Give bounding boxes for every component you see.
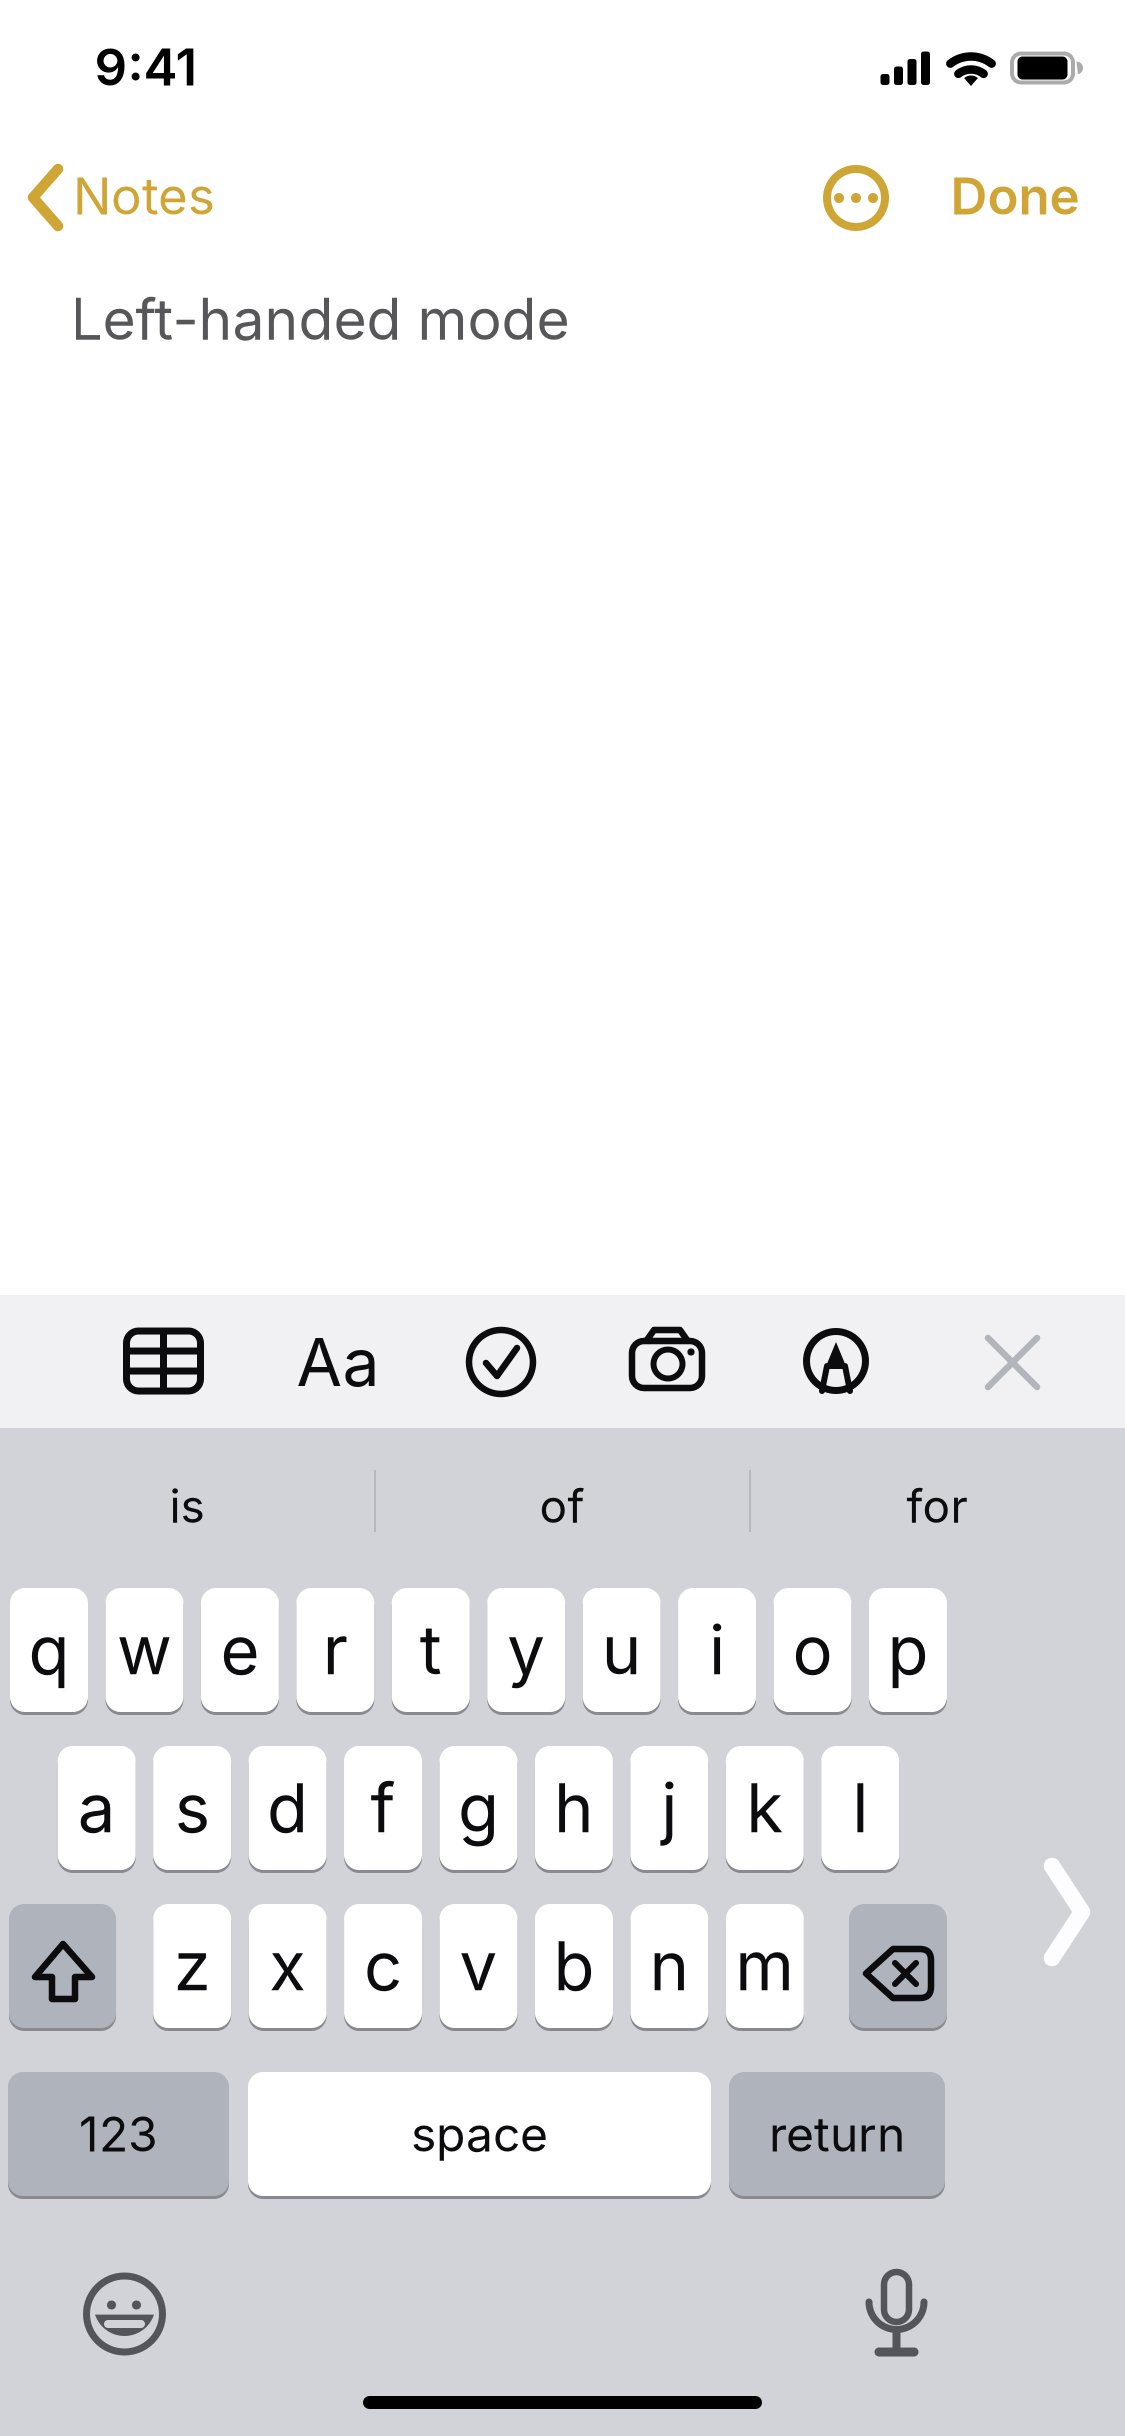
staticText: u bbox=[602, 1609, 642, 1691]
staticText: y bbox=[507, 1609, 545, 1691]
staticText: i bbox=[709, 1609, 725, 1691]
staticText: is bbox=[169, 1478, 204, 1534]
staticText: d bbox=[267, 1767, 308, 1849]
staticText: k bbox=[746, 1767, 783, 1849]
staticText: for bbox=[906, 1478, 967, 1534]
staticText: j bbox=[661, 1767, 677, 1849]
staticText: c bbox=[364, 1925, 402, 2007]
staticText: z bbox=[174, 1925, 211, 2007]
staticText: Left-handed mode bbox=[70, 284, 569, 353]
staticText: space bbox=[411, 2105, 548, 2163]
staticText: b bbox=[553, 1925, 594, 2007]
staticText: g bbox=[458, 1767, 499, 1849]
staticText: o bbox=[792, 1609, 832, 1691]
staticText: m bbox=[735, 1925, 794, 2007]
staticText: 9:41 bbox=[94, 36, 197, 98]
staticText: p bbox=[887, 1609, 928, 1691]
staticText: Aa bbox=[296, 1322, 379, 1402]
staticText: q bbox=[28, 1609, 69, 1691]
staticText: return bbox=[769, 2105, 905, 2163]
staticText: Notes bbox=[73, 165, 215, 227]
staticText: Done bbox=[950, 165, 1079, 227]
staticText: e bbox=[220, 1609, 259, 1691]
staticText: x bbox=[269, 1925, 306, 2007]
staticText: 123 bbox=[79, 2105, 158, 2163]
staticText: w bbox=[117, 1609, 172, 1691]
staticText: h bbox=[554, 1767, 594, 1849]
staticText: s bbox=[175, 1767, 210, 1849]
staticText: l bbox=[852, 1767, 868, 1849]
staticText: n bbox=[649, 1925, 689, 2007]
staticText: v bbox=[459, 1925, 497, 2007]
staticText: a bbox=[78, 1767, 116, 1849]
staticText: of bbox=[539, 1478, 584, 1534]
staticText: t bbox=[420, 1609, 442, 1691]
staticText: r bbox=[323, 1609, 348, 1691]
staticText: f bbox=[370, 1767, 395, 1849]
